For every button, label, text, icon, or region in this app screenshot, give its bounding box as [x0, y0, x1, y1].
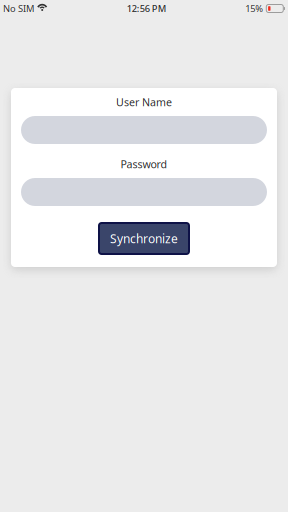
staticText: Synchronize — [110, 230, 178, 246]
staticText: User Name — [116, 95, 172, 109]
button[interactable]: Synchronize — [99, 223, 189, 254]
button[interactable]: User Name — [21, 116, 267, 144]
staticText: Password — [120, 157, 167, 171]
staticText: 15% — [245, 2, 263, 15]
staticText: 12:56 PM — [127, 2, 167, 15]
button[interactable]: Password — [21, 178, 267, 206]
staticText: No SIM — [3, 2, 34, 15]
